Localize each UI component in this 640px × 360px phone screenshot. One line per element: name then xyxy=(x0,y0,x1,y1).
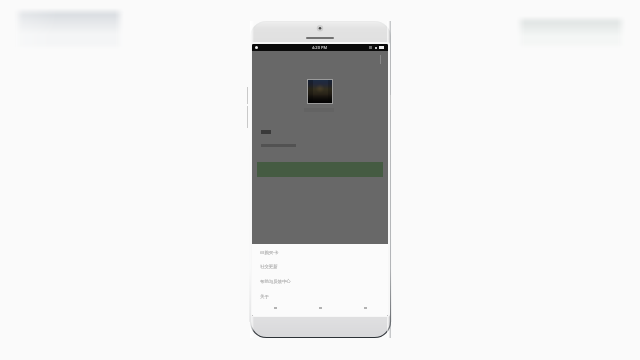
button[interactable]: 已购买·卡 xyxy=(252,244,388,259)
button[interactable]: Recents xyxy=(343,304,388,316)
button[interactable]: Back xyxy=(252,304,298,316)
staticText: 已购买·卡 xyxy=(260,249,279,255)
button[interactable]: 关于 xyxy=(252,289,388,304)
button[interactable]: 帮助与反馈中心 xyxy=(252,274,388,289)
staticText: 社交更新 xyxy=(260,264,278,270)
staticText: 帮助与反馈中心 xyxy=(260,279,291,285)
button[interactable]: Home xyxy=(298,304,343,316)
button[interactable]: 社交更新 xyxy=(252,259,388,274)
staticText: 4:20 PM xyxy=(312,45,328,50)
staticText: 关于 xyxy=(260,294,269,300)
